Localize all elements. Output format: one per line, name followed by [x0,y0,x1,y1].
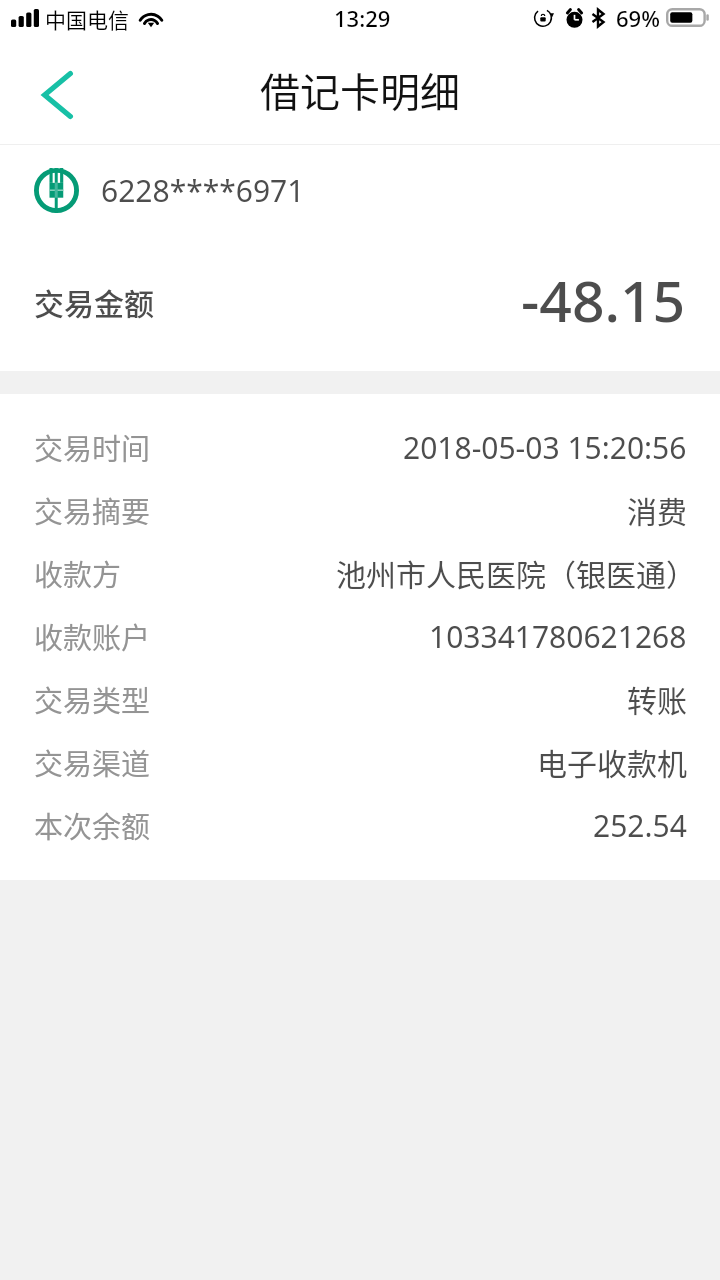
staticText: 6228****6971 [101,170,305,211]
staticText: 电子收款机 [537,740,687,783]
staticText: 103341780621268 [429,616,687,657]
staticText: 交易类型 [34,678,151,720]
staticText: 交易金额 [34,280,154,323]
button[interactable]: 收款账户 [0,606,720,669]
staticText: 收款账户 [34,615,151,657]
staticText: 池州市人民医院（银医通） [336,551,696,594]
staticText: 中国电信 [45,4,129,34]
button[interactable]: 交易摘要 [0,480,720,543]
staticText: 借记卡明细 [260,61,460,119]
staticText: 收款方 [34,552,122,594]
staticText: 转账 [627,677,687,720]
button[interactable]: 交易类型 [0,669,720,732]
staticText: 交易时间 [34,426,151,468]
button[interactable]: 本次余额 [0,795,720,858]
button[interactable]: 交易金额 [0,235,720,371]
button[interactable]: 交易时间 [0,417,720,480]
staticText: -48.15 [521,261,686,339]
staticText: 2018-05-03 15:20:56 [403,427,687,468]
button[interactable]: Back [0,50,104,144]
staticText: 交易摘要 [34,489,151,531]
staticText: 交易渠道 [34,741,151,783]
staticText: 本次余额 [34,804,151,846]
button[interactable]: 6228****6971 [0,145,720,235]
button[interactable]: 交易渠道 [0,732,720,795]
staticText: 消费 [627,488,687,531]
staticText: 69% [616,3,660,33]
staticText: 13:29 [334,3,391,33]
button[interactable]: 收款方 [0,543,720,606]
staticText: 252.54 [593,805,687,846]
